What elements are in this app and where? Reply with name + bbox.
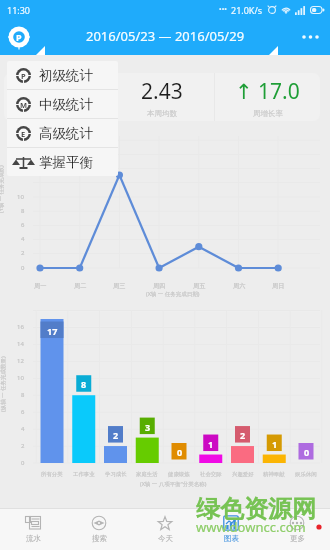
- staticText: 家庭生活: [136, 471, 158, 478]
- button[interactable]: E: [7, 119, 118, 147]
- staticText: 周三: [113, 282, 126, 290]
- staticText: 周二: [74, 282, 87, 290]
- staticText: 8: [21, 391, 25, 399]
- button[interactable]: 更多: [264, 508, 330, 550]
- staticText: 10: [17, 374, 24, 382]
- staticText: 今天: [158, 534, 173, 543]
- staticText: 17: [47, 325, 58, 337]
- staticText: 4: [21, 235, 25, 243]
- staticText: 学习成长: [105, 471, 127, 478]
- staticText: 周六: [233, 282, 246, 290]
- staticText: 0: [304, 446, 310, 458]
- staticText: (纵轴 一 任务完成数量): [0, 356, 7, 412]
- staticText: M: [20, 100, 28, 110]
- button[interactable]: 掌握平衡: [7, 148, 118, 176]
- staticText: www.downcc.com: [196, 518, 306, 536]
- staticText: 1: [208, 438, 214, 450]
- staticText: 更多: [290, 534, 305, 543]
- staticText: 2: [240, 429, 246, 441]
- staticText: •••: [219, 5, 227, 15]
- staticText: P: [21, 71, 26, 81]
- staticText: 周增长率: [253, 109, 283, 118]
- button[interactable]: App logo: [8, 26, 30, 48]
- button[interactable]: 2.43: [109, 73, 214, 121]
- staticText: 10: [17, 193, 24, 201]
- button[interactable]: ↑ 17.0: [215, 73, 320, 121]
- staticText: 21.0K/s: [231, 4, 263, 16]
- staticText: 兴趣爱好: [232, 471, 254, 478]
- staticText: 0: [21, 264, 25, 272]
- staticText: 所有分类: [41, 471, 63, 478]
- staticText: 健康锻炼: [168, 471, 190, 478]
- staticText: 本周均数: [147, 109, 177, 118]
- staticText: 2: [21, 249, 25, 257]
- staticText: 精神奉献: [263, 471, 285, 478]
- staticText: 周一: [34, 282, 47, 290]
- staticText: 图表: [224, 534, 239, 543]
- staticText: 4: [21, 425, 25, 433]
- staticText: 0: [21, 459, 25, 467]
- staticText: 14: [17, 340, 24, 348]
- button[interactable]: P: [7, 61, 118, 89]
- staticText: 社会交际: [200, 471, 222, 478]
- button[interactable]: 搜索: [66, 508, 132, 550]
- staticText: 娱乐休闲: [295, 471, 317, 478]
- staticText: 掌握平衡: [39, 154, 93, 171]
- staticText: 2.43: [141, 77, 183, 106]
- staticText: E: [21, 129, 26, 139]
- staticText: 16: [17, 323, 24, 331]
- staticText: (X轴 一 八项平衡“分类名称): [140, 480, 207, 488]
- staticText: 工作事业: [73, 471, 95, 478]
- staticText: 3: [145, 421, 151, 433]
- button[interactable]: M: [7, 90, 118, 118]
- staticText: 1: [272, 438, 278, 450]
- staticText: ↑ 17.0: [235, 77, 300, 106]
- staticText: 2: [21, 442, 25, 450]
- staticText: 8: [21, 207, 25, 215]
- staticText: 2: [113, 429, 119, 441]
- staticText: 2016/05/23 — 2016/05/29: [86, 27, 245, 45]
- staticText: 6: [21, 408, 25, 416]
- staticText: 6: [21, 221, 25, 229]
- staticText: 高级统计: [39, 125, 93, 142]
- button[interactable]: 图表: [198, 508, 264, 550]
- staticText: 8: [81, 378, 87, 390]
- staticText: 中级统计: [39, 96, 93, 113]
- staticText: 11:30: [7, 4, 31, 16]
- button[interactable]: [4, 73, 108, 121]
- staticText: 初级统计: [39, 67, 93, 84]
- staticText: (Y轴 一 任务完成数): [0, 165, 5, 213]
- staticText: 周四: [153, 282, 166, 290]
- staticText: 流水: [26, 534, 41, 543]
- button[interactable]: More options: [299, 25, 323, 49]
- staticText: 周五: [193, 282, 206, 290]
- staticText: P: [16, 31, 22, 43]
- staticText: 搜索: [92, 534, 107, 543]
- button[interactable]: 今天: [132, 508, 198, 550]
- staticText: 绿色资源网: [196, 494, 316, 524]
- staticText: (X轴 一 任务完成日期): [146, 290, 200, 298]
- staticText: 0: [177, 446, 183, 458]
- staticText: 12: [17, 357, 24, 365]
- button[interactable]: 流水: [0, 508, 66, 550]
- staticText: 周日: [272, 282, 285, 290]
